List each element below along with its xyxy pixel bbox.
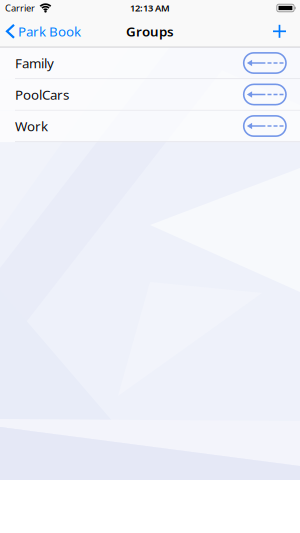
button[interactable]: Work: [0, 111, 300, 142]
staticText: Work: [15, 117, 48, 135]
button[interactable]: PoolCars: [0, 79, 300, 111]
staticText: 12:13 AM: [130, 2, 170, 14]
staticText: Groups: [126, 22, 174, 40]
staticText: Carrier: [5, 2, 35, 14]
button[interactable]: Add: [273, 25, 300, 38]
button[interactable]: Family: [0, 48, 300, 79]
staticText: Park Book: [18, 22, 81, 40]
staticText: PoolCars: [15, 86, 69, 103]
staticText: Family: [15, 54, 54, 72]
button[interactable]: Back: [0, 22, 81, 40]
